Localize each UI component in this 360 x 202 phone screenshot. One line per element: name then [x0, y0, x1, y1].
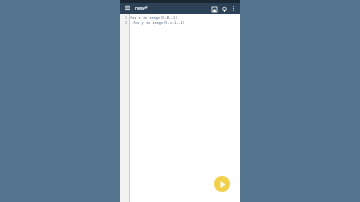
staticText: 1	[125, 15, 128, 20]
staticText: for y in range(5,x-1,-1)	[133, 20, 185, 25]
staticText: 2	[125, 20, 128, 25]
button[interactable]: More options	[229, 4, 238, 13]
staticText: for x in range(5,0,-1)	[130, 15, 178, 20]
button[interactable]: Menu	[123, 4, 132, 13]
button[interactable]: Run	[214, 176, 230, 192]
button[interactable]: Find	[219, 4, 229, 14]
button[interactable]: 1	[120, 14, 240, 202]
staticText: new*	[135, 5, 209, 12]
button[interactable]: Save	[209, 4, 219, 14]
